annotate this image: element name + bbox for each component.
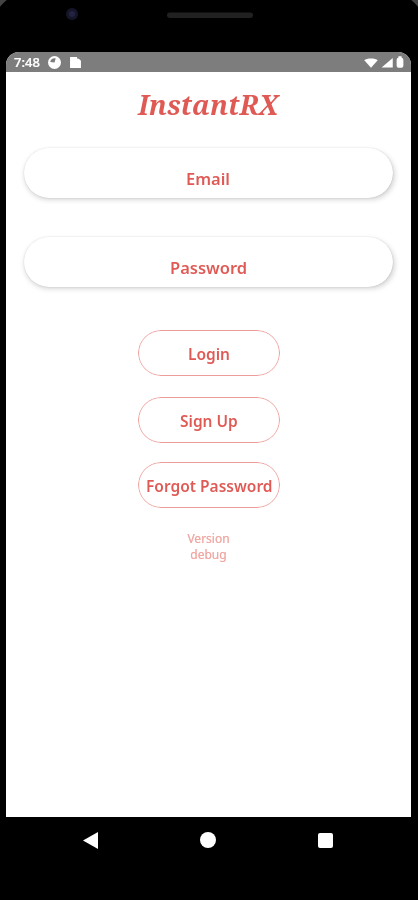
staticText: Login (188, 343, 231, 364)
staticText: InstantRX (138, 86, 279, 123)
staticText: Password (170, 256, 248, 278)
staticText: Version (187, 530, 230, 546)
button[interactable]: Forgot Password (138, 462, 280, 508)
staticText: Forgot Password (146, 475, 273, 496)
button[interactable]: Email (24, 148, 393, 198)
button[interactable]: Login (138, 330, 280, 376)
button[interactable]: Back (70, 820, 110, 860)
staticText: debug (190, 546, 227, 562)
button[interactable]: Home (188, 820, 228, 860)
staticText: 7:48 (14, 53, 40, 71)
button[interactable]: Sign Up (138, 397, 280, 443)
staticText: Sign Up (180, 410, 238, 431)
button[interactable]: Recent apps (305, 820, 345, 860)
button[interactable]: Password (24, 237, 393, 287)
staticText: Email (186, 167, 231, 189)
